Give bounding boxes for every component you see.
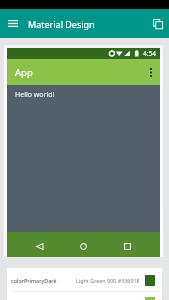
button[interactable]: More options [142, 59, 160, 85]
staticText: Light Green 900 #33691E [76, 277, 140, 284]
button[interactable]: colorPrimaryDark [7, 270, 162, 291]
button[interactable]: colorAccent [7, 292, 162, 300]
staticText: colorPrimaryDark [11, 277, 57, 284]
staticText: 4:54 [143, 49, 156, 58]
button[interactable]: Back [18, 232, 61, 257]
button[interactable]: Home [61, 232, 105, 257]
staticText: App [15, 66, 33, 79]
button[interactable]: Navigation menu [0, 9, 26, 38]
staticText: Material Design [28, 18, 95, 30]
button[interactable]: Recents [105, 232, 149, 257]
button[interactable]: Duplicate theme [146, 9, 169, 38]
staticText: Hello world! [15, 90, 55, 100]
